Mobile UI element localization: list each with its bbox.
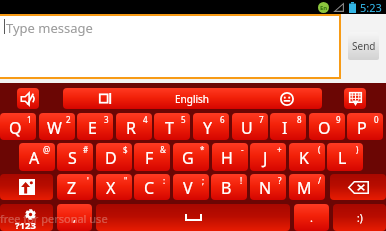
staticText: 1 [27,114,32,125]
button[interactable]: Hide keyboard [344,88,366,109]
staticText: Q [9,117,22,139]
button[interactable]: X [96,174,132,200]
staticText: Z [67,177,77,199]
staticText: # [83,144,89,155]
staticText: D [105,147,117,169]
staticText: ' [87,175,89,186]
button[interactable]: Emoji [276,88,298,109]
staticText: A [29,147,40,169]
staticText: U [241,117,253,139]
button[interactable]: Send [348,32,379,60]
staticText: F [145,147,154,169]
staticText: English [175,92,210,106]
staticText: J [263,147,268,169]
staticText: Y [203,117,213,139]
staticText: 7 [259,114,264,125]
button[interactable]: B [211,174,247,200]
button[interactable]: S [57,143,93,171]
staticText: ( [318,144,321,155]
button[interactable]: K [289,143,325,171]
staticText: B [221,177,232,199]
button[interactable]: P [347,113,383,140]
staticText: / [318,175,321,186]
staticText: " [124,175,128,186]
staticText: free for personal use [0,211,108,226]
button[interactable]: Keyboard layout [94,88,116,109]
button[interactable]: A [19,143,55,171]
button[interactable]: Y [193,113,229,140]
staticText: 3 [104,114,109,125]
button[interactable]: , [57,204,92,231]
staticText: ?123 [15,219,36,231]
button[interactable]: J [250,143,286,171]
staticText: R [126,117,136,139]
staticText: * [200,144,205,155]
staticText: . [310,210,313,225]
staticText: 6 [220,114,225,125]
button[interactable]: :) [333,204,386,231]
button[interactable]: Space [96,204,290,231]
button[interactable]: Type message [0,14,341,79]
staticText: S [68,147,77,169]
staticText: 9 [336,114,341,125]
button[interactable]: R [116,113,152,140]
staticText: Type message [6,19,93,37]
button[interactable]: F [134,143,170,171]
button[interactable]: . [294,204,329,231]
button[interactable]: L [327,143,363,171]
button[interactable]: Z [57,174,93,200]
staticText: En [320,4,328,12]
button[interactable]: O [309,113,345,140]
staticText: L [338,147,347,169]
button[interactable]: T [154,113,190,140]
staticText: C [144,177,155,199]
button[interactable]: W [39,113,75,140]
staticText: ; [202,175,205,186]
button[interactable]: C [134,174,170,200]
staticText: & [160,144,166,155]
staticText: ! [240,175,243,186]
button[interactable]: D [96,143,132,171]
staticText: H [221,147,233,169]
staticText: M [297,177,312,199]
button[interactable]: Shift [0,174,53,200]
button[interactable]: V [173,174,209,200]
button[interactable]: ?123 [0,204,53,231]
staticText: T [165,117,174,139]
button[interactable]: E [77,113,113,140]
button[interactable]: G [173,143,209,171]
staticText: - [241,144,244,155]
staticText: V [183,177,193,199]
button[interactable]: English [63,88,322,109]
button[interactable]: U [232,113,268,140]
staticText: X [106,177,116,199]
staticText: 5 [181,114,186,125]
staticText: : [163,175,166,186]
staticText: 5:23 [360,0,382,14]
button[interactable]: M [289,174,325,200]
staticText: G [182,147,194,169]
staticText: 4 [143,114,148,125]
staticText: K [299,147,309,169]
button[interactable]: Backspace [330,174,386,200]
button[interactable]: I [270,113,306,140]
button[interactable]: H [212,143,248,171]
staticText: ) [356,144,359,155]
staticText: W [47,117,62,139]
staticText: + [277,144,282,155]
staticText: @ [43,144,51,155]
staticText: 2 [66,114,71,125]
button[interactable]: Q [0,113,36,140]
staticText: P [357,117,367,139]
staticText: N [259,177,272,199]
staticText: Send [352,39,376,53]
staticText: 0 [374,114,379,125]
button[interactable]: N [250,174,286,200]
staticText: $ [123,144,128,155]
button[interactable]: Sound off [17,88,39,109]
staticText: O [318,117,331,139]
staticText: E [88,117,97,139]
staticText: 8 [297,114,302,125]
staticText: :) [357,211,363,225]
staticText: ? [278,175,282,186]
